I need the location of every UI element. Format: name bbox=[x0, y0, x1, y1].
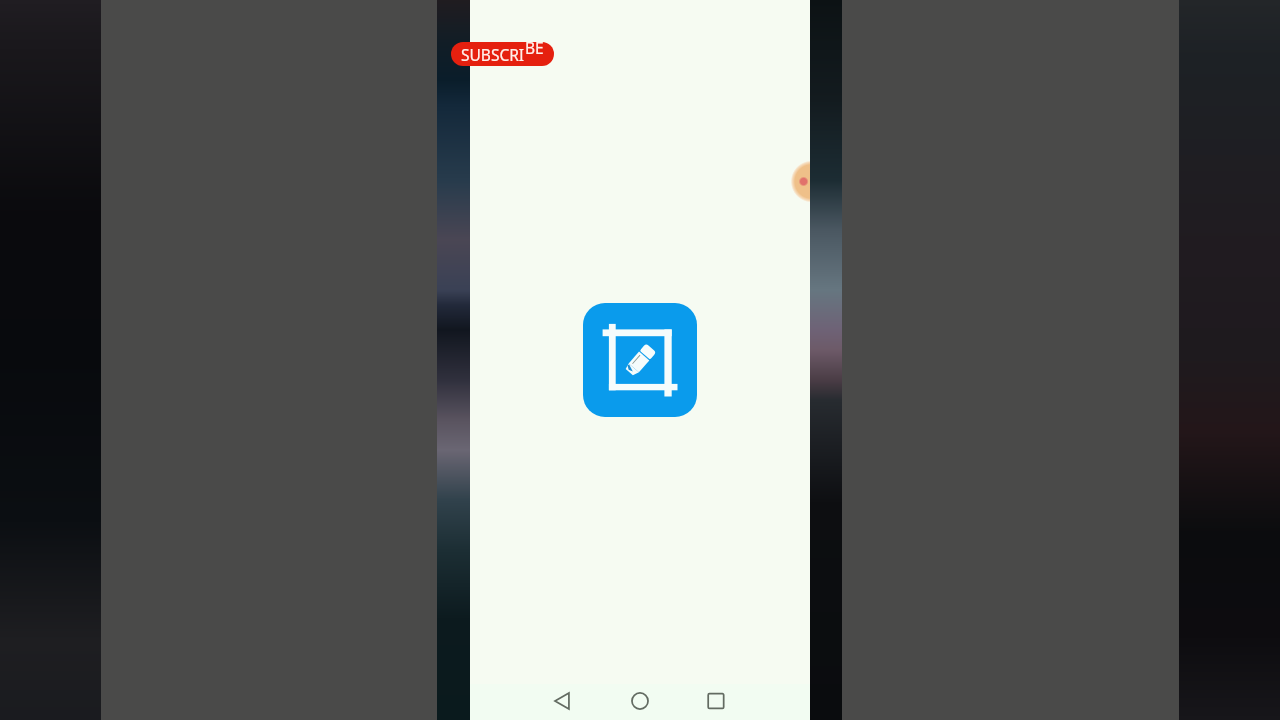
button[interactable]: Recent apps bbox=[704, 689, 728, 713]
button[interactable]: Back bbox=[552, 689, 576, 713]
button[interactable]: Subscribe bbox=[451, 42, 554, 66]
staticText: SUBSCRI bbox=[461, 44, 525, 65]
staticText: BE bbox=[525, 37, 544, 58]
other: App icon bbox=[583, 303, 697, 417]
button[interactable]: Home bbox=[628, 689, 652, 713]
